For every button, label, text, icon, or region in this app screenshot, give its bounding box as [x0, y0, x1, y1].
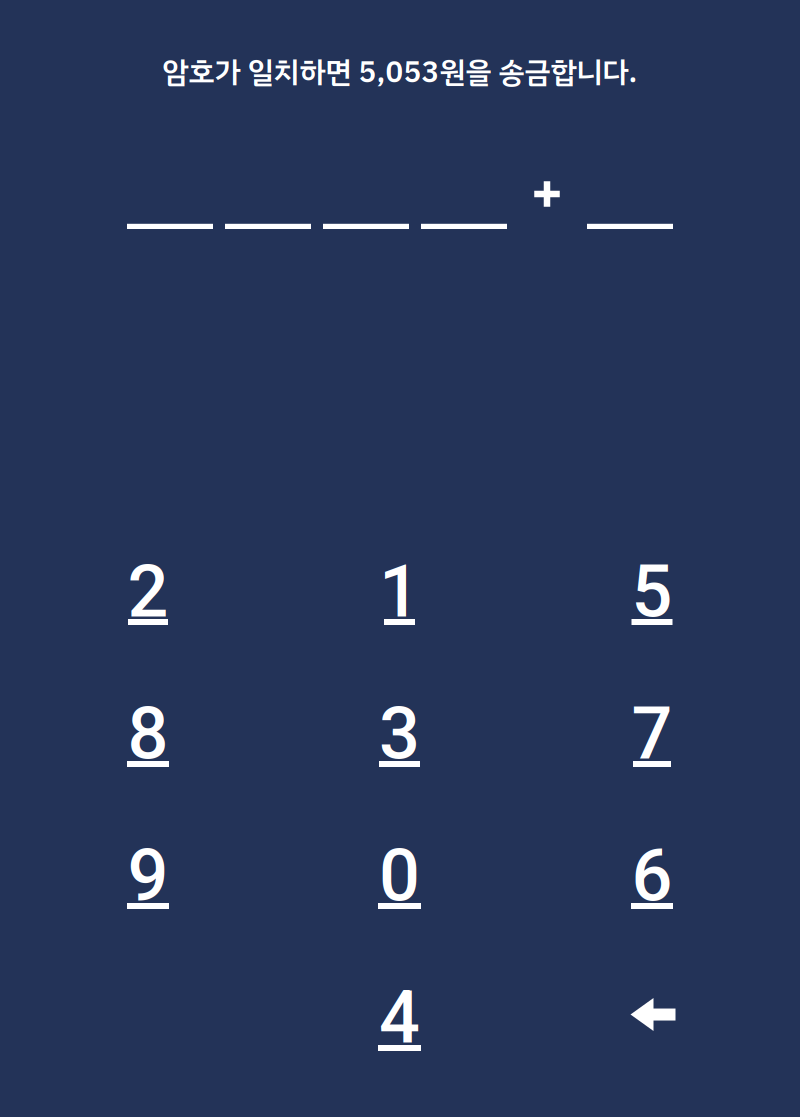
staticText: 1 — [379, 550, 420, 634]
button[interactable]: 4 — [289, 982, 509, 1112]
button[interactable]: 0 — [289, 840, 509, 970]
staticText: 4 — [379, 976, 420, 1060]
staticText: 7 — [631, 692, 672, 776]
button[interactable]: 6 — [542, 840, 762, 970]
button[interactable]: 8 — [38, 698, 258, 828]
button[interactable]: 5 — [542, 556, 762, 686]
staticText: 3 — [379, 692, 420, 776]
staticText: 8 — [127, 692, 168, 776]
staticText: 암호가 일치하면 5,053원을 송금합니다. — [162, 50, 637, 94]
button[interactable]: 1 — [289, 556, 509, 686]
staticText: 5 — [631, 550, 672, 634]
staticText: 6 — [631, 834, 672, 918]
button[interactable]: Delete — [542, 982, 762, 1112]
staticText: 9 — [127, 834, 168, 918]
staticText: 2 — [127, 550, 168, 634]
button[interactable]: 2 — [38, 556, 258, 686]
staticText: 0 — [379, 834, 420, 918]
button[interactable]: 9 — [38, 840, 258, 970]
button[interactable]: 7 — [542, 698, 762, 828]
button[interactable]: 3 — [289, 698, 509, 828]
